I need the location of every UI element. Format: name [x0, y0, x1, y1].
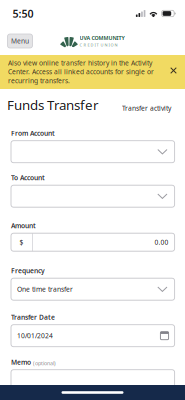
button[interactable]: Dismiss [164, 55, 185, 86]
button[interactable] [11, 185, 175, 207]
staticText: One time transfer [17, 285, 73, 294]
staticText: 10/01/2024 [17, 331, 53, 340]
button[interactable]: Transfer activity [122, 104, 171, 114]
button[interactable]: One time transfer [11, 278, 175, 300]
staticText: Memo [11, 358, 31, 367]
button[interactable]: 10/01/2024 [11, 325, 175, 347]
staticText: Funds Transfer [7, 96, 99, 114]
staticText: Transfer activity [122, 104, 171, 113]
staticText: (optional) [33, 359, 56, 367]
button[interactable] [11, 141, 175, 163]
staticText: From Account [11, 129, 55, 138]
staticText: 0.00 [155, 238, 169, 247]
staticText: C R E D I T U N I O N [79, 42, 117, 48]
staticText: Also view online transfer history in the… [8, 58, 154, 85]
staticText: 5:50 [12, 6, 33, 21]
staticText: Amount [11, 221, 36, 230]
staticText: Menu [11, 37, 29, 45]
staticText: Transfer Date [11, 313, 55, 322]
staticText: $ [19, 238, 23, 247]
staticText: To Account [11, 173, 45, 182]
staticText: Frequency [11, 266, 45, 275]
button[interactable]: Menu [7, 34, 32, 48]
staticText: UVA COMMUNITY [79, 34, 124, 41]
